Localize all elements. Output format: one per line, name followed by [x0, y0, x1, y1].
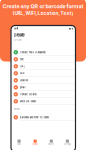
button[interactable]: Create [27, 139, 43, 145]
staticText: Text [20, 58, 24, 61]
staticText: WIFI [20, 72, 25, 75]
button[interactable]: Scan [11, 139, 27, 145]
button[interactable]: Text [11, 56, 75, 63]
staticText: Location [20, 79, 28, 82]
button[interactable]: Contact Tools (Advanced) [11, 49, 75, 56]
staticText: Contact (vCard) [20, 93, 37, 96]
staticText: Settings [64, 143, 71, 145]
staticText: QR code [13, 39, 21, 41]
button[interactable]: Barcodes and other 1D codes [11, 114, 75, 121]
staticText: Barcodes and other 1D codes [20, 116, 49, 119]
staticText: Email [20, 86, 26, 89]
staticText: Scan [17, 143, 21, 145]
button[interactable]: Location [11, 77, 75, 84]
staticText: Create any QR or barcode format [2, 3, 83, 10]
staticText: History [48, 143, 54, 145]
staticText: URL [20, 65, 25, 68]
button[interactable]: Settings [59, 139, 75, 145]
staticText: Decode [13, 108, 19, 110]
staticText: ▮▮ ▮ [69, 27, 73, 30]
staticText: Contact Tools (Advanced) [20, 51, 46, 54]
staticText: Create [32, 143, 38, 145]
staticText: (URL, WIFI, Location, Text) [12, 11, 73, 16]
staticText: More QR codes [20, 100, 36, 103]
button[interactable]: History [43, 139, 59, 145]
staticText: Create [13, 33, 24, 37]
button[interactable]: Contact (vCard) [11, 91, 75, 98]
button[interactable]: WIFI [11, 70, 75, 77]
button[interactable]: URL [11, 63, 75, 70]
staticText: 9:41 [14, 27, 18, 30]
button[interactable]: More QR codes [11, 98, 75, 105]
button[interactable]: Email [11, 84, 75, 91]
